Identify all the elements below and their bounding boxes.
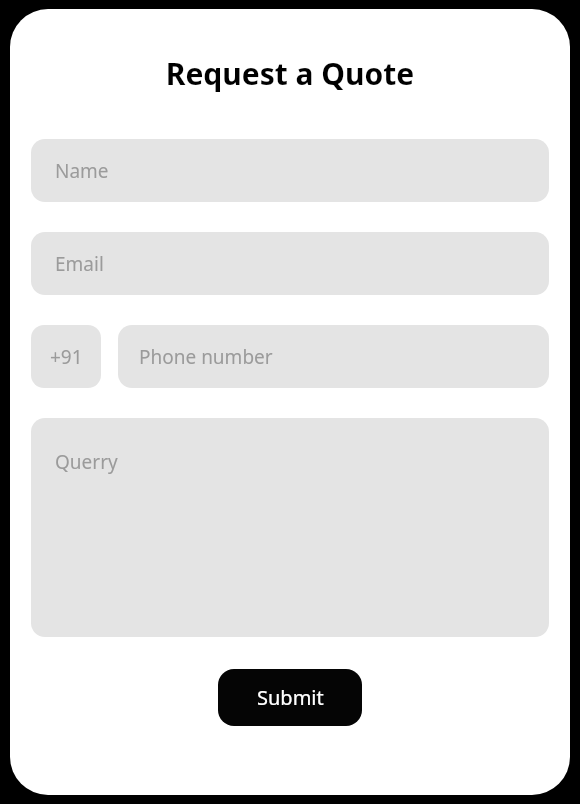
staticText: Submit: [257, 684, 324, 711]
staticText: Email: [55, 251, 104, 277]
staticText: Request a Quote: [10, 53, 570, 94]
button[interactable]: Email: [31, 232, 549, 295]
button[interactable]: Querry: [31, 418, 549, 637]
button[interactable]: Submit: [218, 669, 362, 726]
staticText: Phone number: [139, 344, 273, 370]
staticText: Name: [55, 158, 109, 184]
button[interactable]: Phone number: [118, 325, 549, 388]
button[interactable]: Name: [31, 139, 549, 202]
staticText: +91: [50, 344, 83, 370]
button[interactable]: Country code +91: [31, 325, 101, 388]
staticText: Querry: [55, 449, 118, 475]
